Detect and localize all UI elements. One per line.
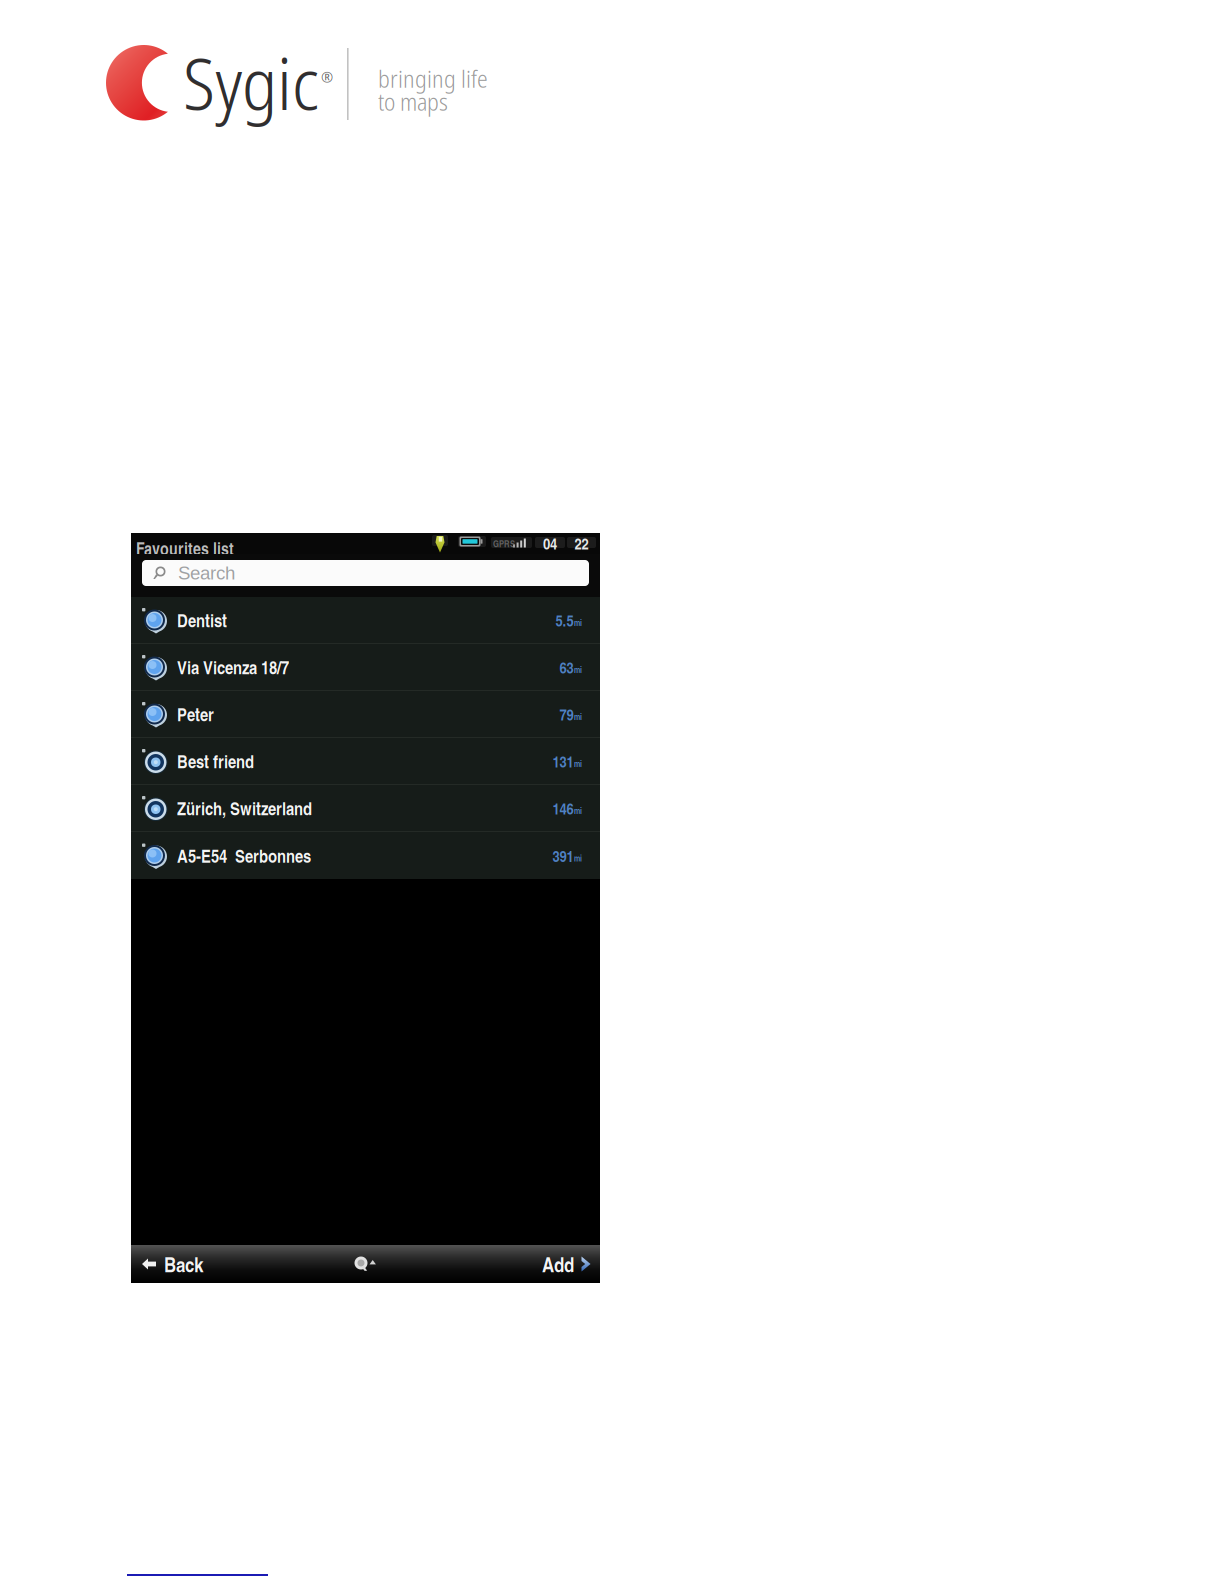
staticText: Sygic xyxy=(183,33,319,131)
staticText: 131 xyxy=(552,750,573,772)
button[interactable]: Search xyxy=(345,1245,385,1283)
button[interactable]: Add xyxy=(460,1245,600,1283)
staticText: 63 xyxy=(559,656,573,678)
staticText: Zürich, Switzerland xyxy=(177,795,312,821)
staticText: GPRS xyxy=(493,537,515,550)
staticText: mi xyxy=(574,757,582,770)
button[interactable]: Back xyxy=(131,1245,271,1283)
staticText: Dentist xyxy=(177,607,227,633)
staticText: Peter xyxy=(177,701,214,727)
staticText: mi xyxy=(574,804,582,817)
staticText: mi xyxy=(574,852,582,864)
staticText: mi xyxy=(574,710,582,723)
staticText: Back xyxy=(164,1249,203,1279)
button[interactable]: Best friend xyxy=(131,738,600,785)
staticText: A5-E54 Serbonnes xyxy=(177,843,311,868)
staticText: bringing life xyxy=(378,62,488,95)
button[interactable]: Peter xyxy=(131,691,600,738)
staticText: 5.5 xyxy=(555,609,573,631)
button[interactable]: Search xyxy=(142,560,589,586)
button[interactable]: A5-E54 Serbonnes xyxy=(131,832,600,879)
button[interactable]: Via Vicenza 18/7 xyxy=(131,644,600,691)
staticText: Search xyxy=(178,563,235,583)
staticText: 79 xyxy=(559,703,573,725)
staticText: 04 xyxy=(543,532,557,554)
staticText: Add xyxy=(542,1249,574,1279)
staticText: mi xyxy=(574,663,582,676)
button[interactable]: Zürich, Switzerland xyxy=(131,785,600,832)
staticText: mi xyxy=(574,616,582,629)
staticText: 146 xyxy=(552,797,573,819)
staticText: 22 xyxy=(574,532,588,554)
staticText: ® xyxy=(321,67,333,87)
staticText: Best friend xyxy=(177,748,254,774)
staticText: Via Vicenza 18/7 xyxy=(177,654,289,680)
staticText: 391 xyxy=(552,844,573,867)
staticText: Favourites list xyxy=(136,536,234,560)
staticText: to maps xyxy=(378,85,448,118)
button[interactable]: Dentist xyxy=(131,597,600,644)
